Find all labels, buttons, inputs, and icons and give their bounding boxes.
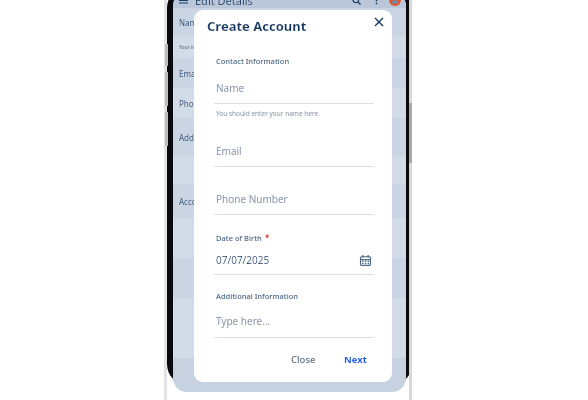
button[interactable]: Name [173,8,406,36]
staticText: 07/07/2025 [216,253,270,267]
button[interactable] [173,258,406,298]
staticText: Address [179,132,210,143]
staticText: Edit Details [195,0,253,8]
button[interactable]: 07/07/2025 [216,253,372,267]
staticText: Email [216,144,242,158]
staticText: Close [291,353,316,366]
button[interactable]: Email [173,58,406,88]
staticText: Email [179,68,200,79]
button[interactable] [173,156,406,184]
button[interactable]: Search [350,0,362,6]
button[interactable]: More options [370,0,382,6]
staticText: Your info [179,44,201,51]
button[interactable] [173,218,406,258]
button[interactable]: Close dialog [371,14,387,30]
staticText: Name [179,17,202,28]
staticText: Phone Number [216,192,288,206]
staticText: Additional Information [216,291,299,301]
staticText: Date of Birth [216,233,262,243]
button[interactable]: Phone [173,88,406,118]
staticText: Contact Information [216,56,290,66]
button[interactable]: Next [337,349,374,370]
button[interactable]: Pick date [358,253,372,267]
staticText: Account [179,196,210,207]
button[interactable]: Profile [389,0,401,6]
staticText: Type here... [216,314,271,328]
staticText: Name [216,81,245,95]
button[interactable]: Close [284,349,323,370]
button[interactable]: Address [173,118,406,156]
staticText: Create Account [207,17,307,35]
button[interactable]: Menu [178,0,189,6]
staticText: Phone [179,98,204,109]
staticText: Next [344,353,367,366]
staticText: * [265,232,270,243]
button[interactable]: Account [173,184,406,218]
button[interactable]: Your info [173,36,406,58]
staticText: You should enter your name here. [216,109,320,118]
button[interactable] [173,298,406,358]
